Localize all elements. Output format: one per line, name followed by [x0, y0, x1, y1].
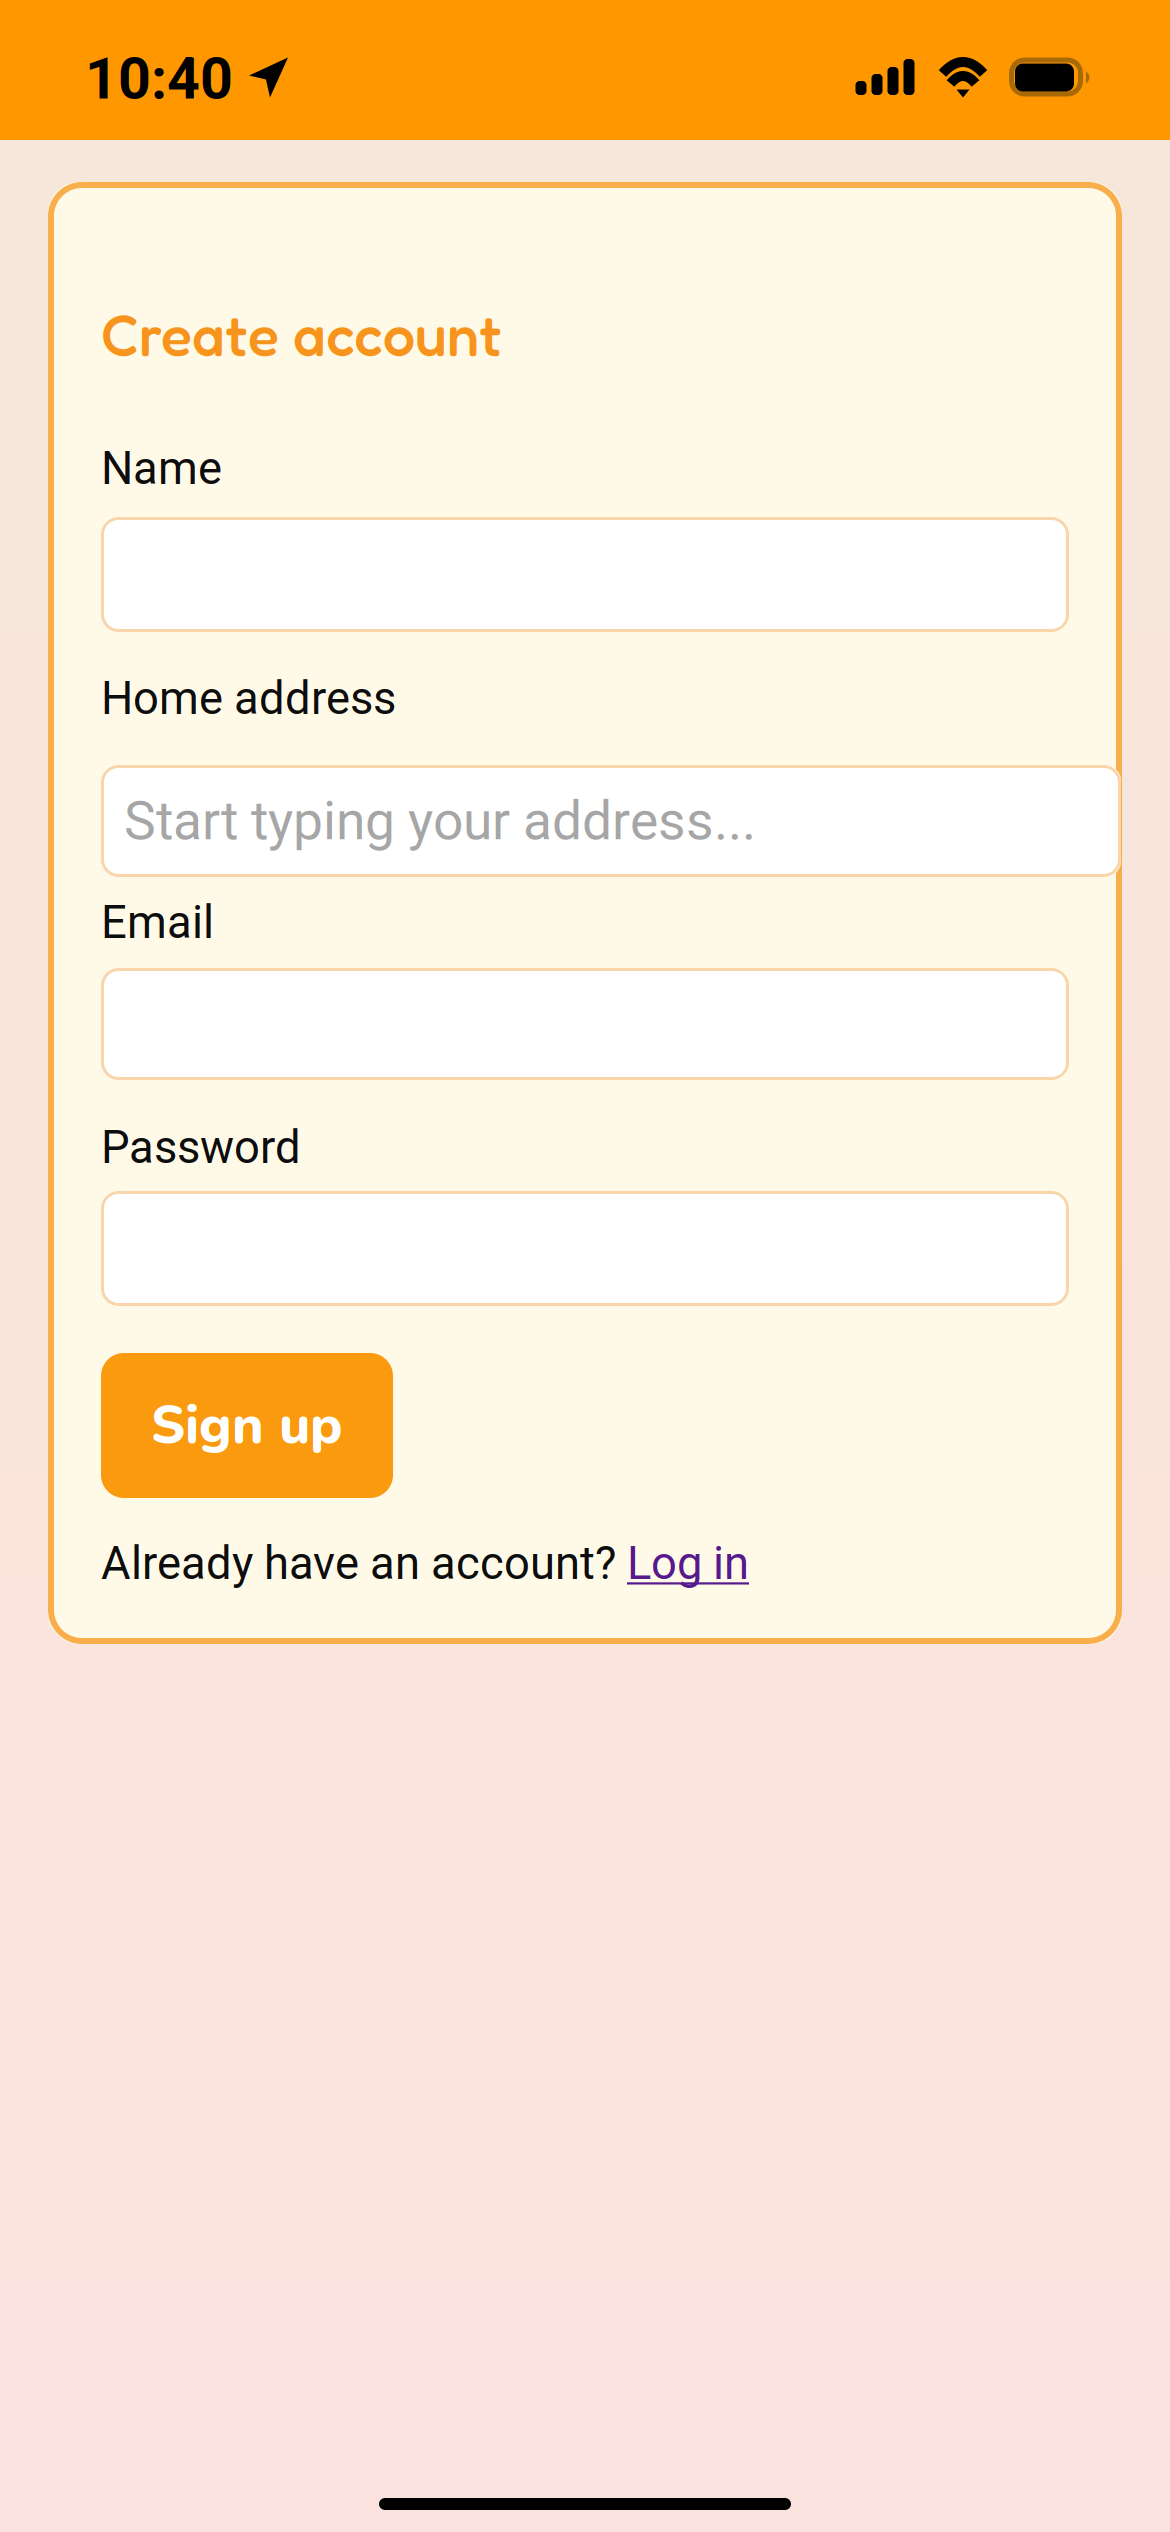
staticText: Home address	[101, 672, 396, 725]
staticText: Already have an account?	[101, 1537, 627, 1590]
staticText: Name	[101, 442, 222, 495]
button[interactable]: Text field	[101, 517, 1069, 632]
button[interactable]: Log in	[627, 1537, 749, 1590]
button[interactable]: Sign up	[101, 1353, 393, 1498]
staticText: Start typing your address...	[124, 790, 756, 852]
button[interactable]: Text field	[101, 1191, 1069, 1306]
button[interactable]: Start typing your address...	[101, 765, 1121, 877]
staticText: Sign up	[151, 1389, 343, 1462]
staticText: Email	[101, 896, 214, 949]
staticText: Password	[101, 1121, 301, 1174]
staticText: 10:40	[85, 45, 233, 113]
staticText: Log in	[627, 1537, 749, 1590]
button[interactable]: Text field	[101, 968, 1069, 1080]
staticText: Create account	[101, 299, 502, 369]
